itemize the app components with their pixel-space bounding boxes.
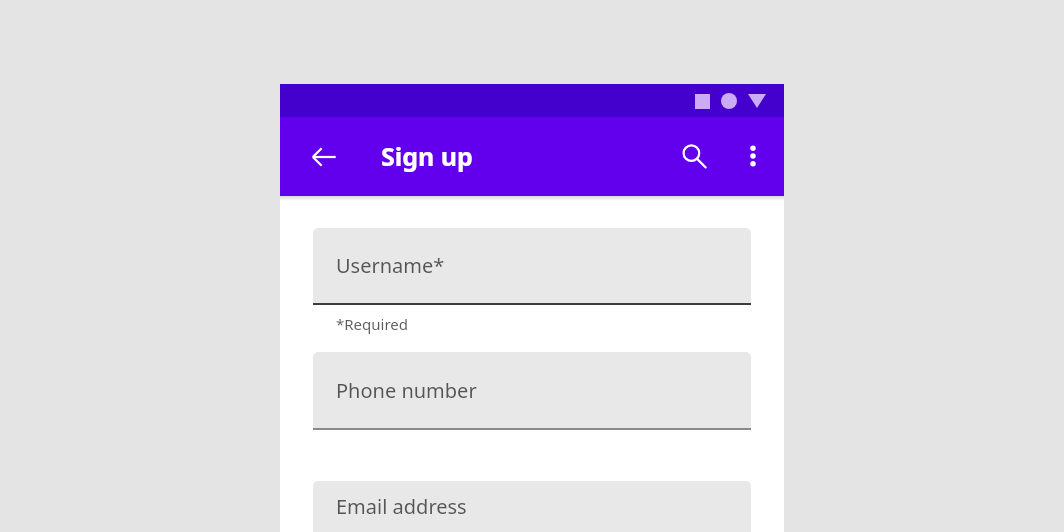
button[interactable]: More options (729, 132, 777, 180)
button[interactable]: Email address (313, 481, 751, 532)
staticText: Username* (336, 252, 445, 279)
button[interactable]: Username* (313, 228, 751, 305)
staticText: *Required (336, 314, 409, 334)
staticText: Sign up (381, 139, 473, 173)
staticText: Phone number (336, 377, 477, 404)
button[interactable]: Phone number (313, 352, 751, 430)
button[interactable]: Back (300, 133, 348, 181)
staticText: Email address (336, 493, 467, 520)
button[interactable]: Search (670, 132, 718, 180)
